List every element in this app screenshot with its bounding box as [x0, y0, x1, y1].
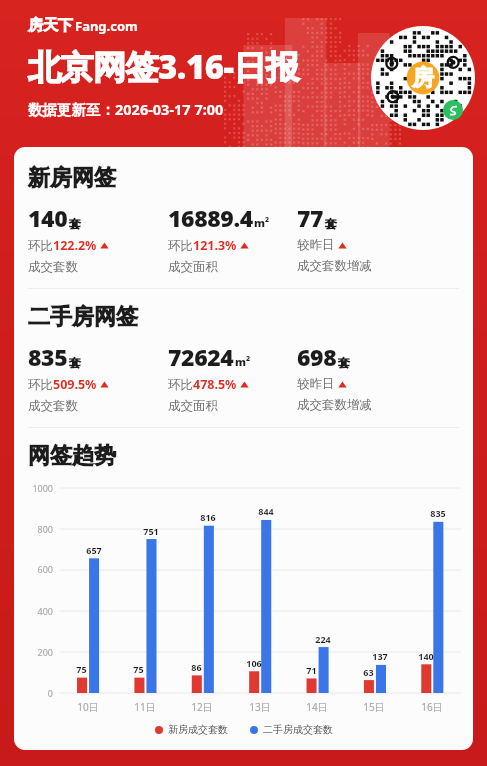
staticText: 北京网签3.16-日报 — [28, 44, 299, 89]
staticText: 800 — [37, 523, 53, 535]
staticText: 140 — [418, 650, 434, 662]
staticText: 12日 — [191, 700, 213, 714]
staticText: 13日 — [249, 700, 271, 714]
staticText: 75 — [76, 663, 87, 675]
staticText: 224 — [315, 633, 331, 645]
staticText: 16889.4 — [168, 202, 253, 233]
staticText: 698 — [297, 341, 337, 372]
staticText: 122.2% — [53, 237, 97, 254]
staticText: 数据更新至：2026-03-17 7:00 — [28, 99, 224, 119]
staticText: 16日 — [421, 700, 443, 714]
staticText: 835 — [28, 341, 68, 372]
staticText: 2 — [246, 354, 251, 364]
staticText: 房天下 — [28, 16, 73, 35]
staticText: 成交套数增减 — [297, 397, 372, 413]
staticText: 14日 — [306, 700, 328, 714]
staticText: 10日 — [77, 700, 99, 714]
staticText: 509.5% — [53, 376, 97, 393]
staticText: 140 — [28, 202, 68, 233]
staticText: 835 — [430, 507, 446, 519]
staticText: m — [254, 215, 265, 230]
staticText: 200 — [37, 646, 53, 658]
staticText: 环比 — [28, 238, 53, 254]
button[interactable]: 二手房成交套数 — [250, 723, 333, 736]
staticText: 成交套数 — [28, 259, 78, 275]
button[interactable]: 新房成交套数 — [155, 723, 228, 736]
staticText: 新房成交套数 — [168, 723, 228, 736]
staticText: 房 — [412, 64, 434, 92]
staticText: 15日 — [363, 700, 385, 714]
staticText: 环比 — [168, 238, 193, 254]
staticText: 400 — [37, 605, 53, 617]
staticText: 二手房网签 — [28, 303, 138, 331]
staticText: 网签趋势 — [28, 442, 116, 470]
staticText: 72624 — [168, 341, 234, 372]
staticText: 成交套数增减 — [297, 258, 372, 274]
staticText: m — [235, 354, 246, 369]
staticText: 成交面积 — [168, 259, 218, 275]
staticText: 环比 — [168, 377, 193, 393]
staticText: 1000 — [32, 482, 53, 494]
staticText: 63 — [363, 666, 374, 678]
staticText: 137 — [372, 650, 388, 662]
staticText: 121.3% — [193, 237, 237, 254]
staticText: 成交套数 — [28, 398, 78, 414]
staticText: 478.5% — [193, 376, 237, 393]
staticText: 套 — [338, 355, 350, 370]
staticText: 11日 — [134, 700, 156, 714]
staticText: 新房网签 — [28, 164, 116, 192]
staticText: Fang.com — [75, 17, 138, 35]
staticText: 较昨日 — [297, 376, 335, 392]
staticText: 套 — [325, 216, 337, 231]
staticText: 77 — [297, 202, 324, 233]
staticText: 75 — [133, 663, 144, 675]
staticText: 844 — [258, 505, 274, 517]
staticText: 较昨日 — [297, 237, 335, 253]
staticText: 环比 — [28, 377, 53, 393]
staticText: 657 — [86, 544, 102, 556]
button[interactable]: 扫码关注小程序 — [371, 26, 475, 130]
staticText: 套 — [69, 216, 81, 231]
staticText: 106 — [246, 657, 262, 669]
staticText: 816 — [200, 511, 216, 523]
staticText: 二手房成交套数 — [263, 723, 333, 736]
staticText: 2 — [265, 215, 270, 225]
staticText: 0 — [47, 687, 53, 699]
staticText: 751 — [143, 525, 159, 537]
staticText: 成交面积 — [168, 398, 218, 414]
staticText: 71 — [306, 664, 317, 676]
staticText: 86 — [191, 661, 202, 673]
staticText: 600 — [37, 563, 53, 575]
staticText: 套 — [69, 355, 81, 370]
